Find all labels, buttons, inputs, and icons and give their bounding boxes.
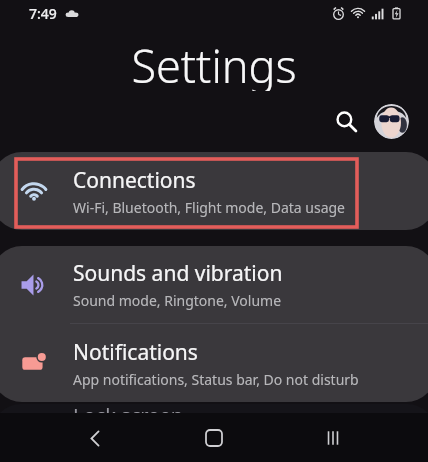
button[interactable]: Sounds and vibration: [0, 246, 428, 323]
staticText: Connections: [73, 166, 196, 195]
button[interactable]: Profile: [374, 104, 409, 139]
staticText: Wi-Fi, Bluetooth, Flight mode, Data usag…: [73, 198, 346, 217]
button[interactable]: Back: [71, 414, 119, 462]
button[interactable]: Home: [190, 414, 238, 462]
staticText: 7:49: [29, 4, 57, 23]
staticText: Notifications: [73, 338, 198, 367]
staticText: App notifications, Status bar, Do not di…: [73, 370, 359, 389]
staticText: Settings: [131, 35, 297, 91]
button[interactable]: Search: [330, 105, 362, 137]
button[interactable]: Connections: [0, 152, 428, 230]
button[interactable]: Lock screen: [0, 404, 428, 460]
button[interactable]: Recents: [309, 414, 357, 462]
staticText: Sounds and vibration: [73, 259, 283, 288]
staticText: Sound mode, Ringtone, Volume: [73, 291, 282, 310]
staticText: Lock screen: [73, 402, 184, 429]
button[interactable]: Notifications: [0, 324, 428, 402]
